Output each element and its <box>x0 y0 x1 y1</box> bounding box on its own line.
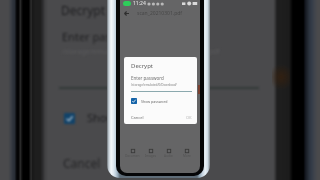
staticText: Show password <box>87 110 168 125</box>
staticText: Enter password <box>131 75 164 81</box>
button[interactable]: Audio <box>161 149 176 158</box>
staticText: Show password <box>141 99 168 104</box>
staticText: More <box>183 154 191 158</box>
button[interactable]: Images <box>143 149 158 158</box>
staticText: Documents <box>125 154 140 158</box>
staticText: Audio <box>164 154 173 158</box>
staticText: Cancel <box>63 155 101 171</box>
staticText: Enter password <box>62 29 143 44</box>
staticText: /storage/emulated/0/Download/scan_00021.… <box>62 47 220 57</box>
button[interactable]: OK <box>186 115 192 120</box>
button[interactable]: Cancel <box>131 115 144 120</box>
staticText: Decrypt <box>131 62 154 70</box>
staticText: Images <box>145 154 157 158</box>
button[interactable]: Back <box>123 10 130 17</box>
staticText: Decrypt <box>61 2 106 18</box>
button[interactable]: Documents <box>125 149 140 158</box>
staticText: 11:24 <box>133 0 146 7</box>
staticText: /storage/emulated/0/Download/scan_00021.… <box>131 83 192 87</box>
button[interactable]: More <box>179 149 194 158</box>
staticText: scan_20210301.pdf <box>137 10 183 17</box>
button[interactable]: Show password <box>131 98 168 104</box>
